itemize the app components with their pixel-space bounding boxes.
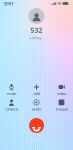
button[interactable]: video	[50, 83, 72, 96]
staticText: 532	[30, 26, 42, 34]
button[interactable]: End call	[29, 118, 44, 133]
staticText: video	[57, 91, 66, 96]
staticText: keypad	[55, 106, 67, 111]
button[interactable]: mute	[0, 83, 22, 96]
staticText: audio	[32, 106, 41, 111]
button[interactable]: audio	[25, 98, 47, 111]
staticText: mute	[7, 91, 16, 96]
staticText: add	[33, 91, 39, 96]
staticText: 9:41	[4, 0, 14, 7]
button[interactable]: keypad	[50, 98, 72, 111]
button[interactable]: contacts	[0, 98, 22, 111]
staticText: contacts	[4, 106, 18, 111]
staticText: calling…	[29, 35, 43, 40]
button[interactable]: add	[25, 83, 47, 96]
